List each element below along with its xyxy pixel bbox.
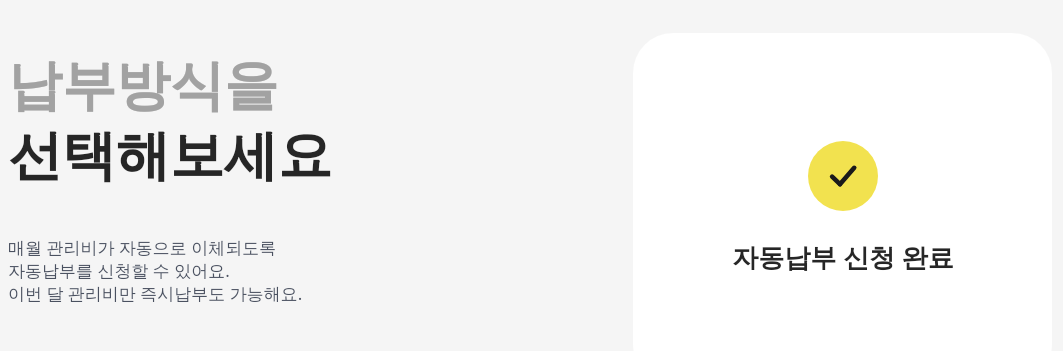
- staticText: 자동납부 신청 완료: [732, 239, 954, 275]
- button[interactable]: 완료: [633, 33, 1052, 351]
- staticText: 매월 관리비가 자동으로 이체되도록: [8, 236, 277, 259]
- staticText: 자동납부를 신청할 수 있어요.: [8, 259, 230, 282]
- staticText: 납부방식을: [8, 52, 278, 120]
- staticText: 선택해보세요: [8, 122, 332, 190]
- staticText: 이번 달 관리비만 즉시납부도 가능해요.: [8, 282, 303, 305]
- other: 완료: [808, 141, 878, 211]
